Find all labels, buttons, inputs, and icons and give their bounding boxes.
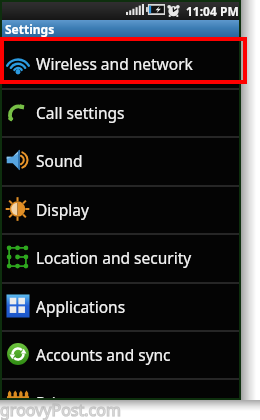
staticText: Accounts and sync xyxy=(36,344,171,365)
button[interactable]: Display xyxy=(0,185,241,233)
staticText: Sound xyxy=(36,150,83,171)
button[interactable]: Accounts and sync xyxy=(0,330,241,378)
staticText: Settings xyxy=(5,21,55,37)
staticText: Display xyxy=(36,199,89,220)
staticText: Call settings xyxy=(36,102,125,123)
button[interactable]: Wireless and network xyxy=(0,39,241,87)
button[interactable]: Applications xyxy=(0,282,241,330)
staticText: Applications xyxy=(36,296,126,317)
button[interactable]: Location and security xyxy=(0,233,241,281)
button[interactable]: Sound xyxy=(0,136,241,184)
staticText: Wireless and network xyxy=(36,53,193,74)
staticText: 11:04 PM xyxy=(186,3,239,19)
staticText: groovyPost.com xyxy=(0,399,121,420)
button[interactable]: Privacy xyxy=(0,378,241,400)
staticText: Location and security xyxy=(36,247,192,268)
staticText: Privacy xyxy=(36,392,88,400)
button[interactable]: Call settings xyxy=(0,88,241,136)
